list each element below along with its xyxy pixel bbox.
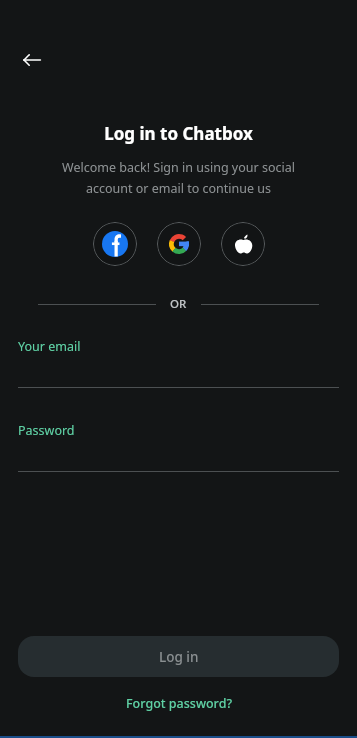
staticText: Welcome back! Sign in using your social …	[28, 159, 329, 196]
button[interactable]: Log in	[18, 636, 339, 677]
button[interactable]: Back	[14, 42, 50, 78]
staticText: OR	[170, 296, 187, 312]
staticText: Forgot password?	[126, 695, 232, 712]
button[interactable]: Password	[18, 422, 339, 492]
staticText: Log in to Chatbox	[0, 122, 357, 145]
button[interactable]: Forgot password?	[116, 693, 242, 714]
staticText: Log in	[159, 648, 199, 666]
button[interactable]: Sign in with Facebook	[93, 222, 137, 266]
button[interactable]: Your email	[18, 338, 339, 408]
button[interactable]: Sign in with Apple	[221, 222, 265, 266]
staticText: Password	[18, 422, 75, 439]
button[interactable]: Sign in with Google	[157, 222, 201, 266]
staticText: Your email	[18, 338, 81, 355]
